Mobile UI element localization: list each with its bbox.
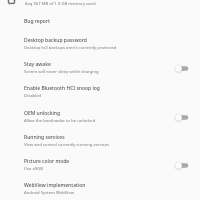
button[interactable]: Toggle setting — [174, 110, 190, 124]
staticText: Desktop full backups aren't currently pr… — [24, 45, 117, 51]
staticText: Screen will never sleep while charging — [24, 69, 99, 75]
staticText: WebView implementation — [24, 182, 86, 189]
button[interactable]: Enable Bluetooth HCI snoop log — [0, 80, 200, 104]
button[interactable]: WebView implementation — [0, 177, 200, 200]
staticText: Disabled — [24, 93, 42, 99]
button[interactable]: Toggle setting — [174, 61, 190, 75]
staticText: Stay awake — [24, 61, 51, 68]
staticText: Avg 567 MB of 1.0 GB memory used — [25, 1, 96, 7]
staticText: Use sRGB — [24, 166, 43, 172]
staticText: Desktop backup password — [24, 37, 87, 44]
staticText: Allow the bootloader to be unlocked — [24, 118, 96, 124]
button[interactable]: Toggle setting — [174, 158, 190, 172]
button[interactable]: Avg 567 MB of 1.0 GB memory used — [0, 0, 200, 7]
button[interactable]: OEM unlocking — [0, 105, 200, 129]
button[interactable]: Desktop backup password — [0, 32, 200, 56]
staticText: Enable Bluetooth HCI snoop log — [24, 85, 100, 92]
staticText: Running services — [24, 134, 65, 141]
staticText: Bug report — [24, 18, 50, 25]
staticText: View and control currently running servi… — [24, 142, 110, 148]
button[interactable]: Running services — [0, 129, 200, 153]
staticText: Android System WebView — [24, 190, 74, 196]
staticText: OEM unlocking — [24, 110, 61, 117]
button[interactable]: Bug report — [0, 9, 200, 33]
button[interactable]: Stay awake — [0, 56, 200, 80]
button[interactable]: Picture color mode — [0, 153, 200, 177]
staticText: Picture color mode — [24, 158, 70, 165]
